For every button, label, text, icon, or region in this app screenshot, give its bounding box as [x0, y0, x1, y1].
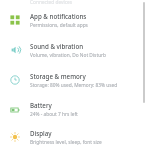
staticText: Display: [30, 129, 52, 137]
staticText: Brightness level, sleep, font size: [30, 139, 102, 146]
staticText: Battery: [30, 101, 52, 109]
staticText: App & notifications: [30, 12, 87, 20]
staticText: 24% - about 7 hrs left: [30, 111, 78, 118]
staticText: Storage & memory: [30, 72, 86, 80]
staticText: Permissions, default apps: [30, 22, 88, 29]
staticText: Connected devices: [30, 0, 73, 4]
button[interactable]: App & notifications: [0, 5, 150, 35]
staticText: Sound & vibration: [30, 42, 84, 50]
button[interactable]: Connected devices: [0, 0, 150, 5]
button[interactable]: Sound & vibration: [0, 35, 150, 65]
button[interactable]: Display: [0, 124, 150, 150]
staticText: Volume, vibration, Do Not Disturb: [30, 52, 107, 59]
button[interactable]: Battery: [0, 95, 150, 124]
button[interactable]: Storage & memory: [0, 65, 150, 95]
staticText: Storage: 80% used, Memory: 83% used: [30, 82, 118, 89]
